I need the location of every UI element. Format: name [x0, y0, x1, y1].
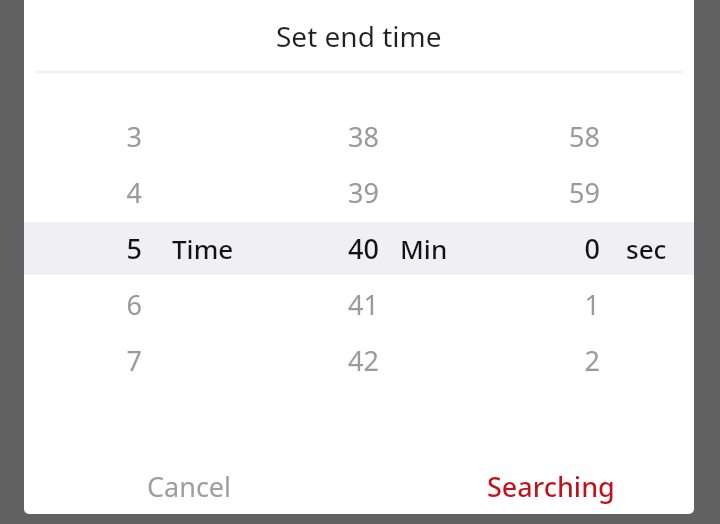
staticText: sec — [626, 231, 667, 266]
staticText: 39 — [348, 174, 379, 210]
staticText: 40 — [348, 230, 379, 266]
staticText: 6 — [126, 286, 142, 322]
staticText: 2 — [584, 342, 600, 378]
staticText: 4 — [126, 174, 142, 210]
staticText: 0 — [584, 230, 600, 266]
button[interactable]: 58 sec — [450, 108, 640, 164]
staticText: 41 — [348, 286, 379, 322]
staticText: Min — [400, 231, 448, 266]
staticText: Time — [172, 231, 234, 266]
staticText: Set end time — [276, 17, 442, 55]
staticText: 1 — [584, 286, 600, 322]
button[interactable]: 6 Time — [0, 276, 182, 332]
staticText: Cancel — [147, 468, 232, 505]
button[interactable]: 7 Time — [0, 332, 182, 388]
button[interactable]: 0 sec — [450, 220, 640, 276]
staticText: 58 — [569, 118, 600, 154]
button[interactable]: Cancel — [84, 456, 294, 516]
button[interactable]: 4 Time — [0, 164, 182, 220]
button[interactable]: 39 Min — [229, 164, 419, 220]
button[interactable]: 40 Min — [229, 220, 419, 276]
staticText: 42 — [348, 342, 379, 378]
button[interactable]: 5 Time — [0, 220, 182, 276]
staticText: 3 — [126, 118, 142, 154]
button[interactable]: 2 sec — [450, 332, 640, 388]
staticText: Searching — [487, 468, 615, 505]
staticText: 7 — [126, 342, 142, 378]
button[interactable]: 3 Time — [0, 108, 182, 164]
staticText: 38 — [348, 118, 379, 154]
button[interactable]: 38 Min — [229, 108, 419, 164]
staticText: 5 — [126, 230, 142, 266]
button[interactable]: Searching — [428, 456, 673, 516]
button[interactable]: 41 Min — [229, 276, 419, 332]
staticText: 59 — [569, 174, 600, 210]
button[interactable]: 1 sec — [450, 276, 640, 332]
button[interactable]: 59 sec — [450, 164, 640, 220]
button[interactable]: 42 Min — [229, 332, 419, 388]
